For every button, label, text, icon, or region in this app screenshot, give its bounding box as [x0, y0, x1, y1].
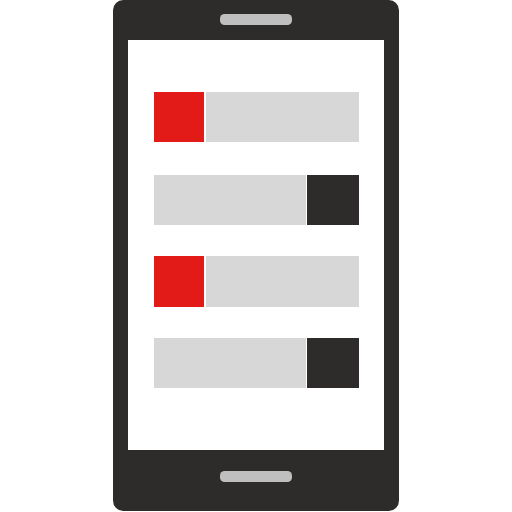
button[interactable]: List item two	[154, 175, 359, 225]
button[interactable]: List item one	[154, 92, 359, 142]
button[interactable]: List item four	[154, 338, 359, 388]
button[interactable]: Home	[220, 471, 292, 482]
button[interactable]: List item three	[154, 256, 359, 307]
